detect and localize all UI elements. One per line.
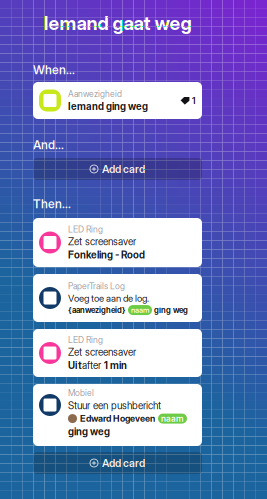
button[interactable]: Add card: [33, 158, 202, 180]
staticText: 1 min: [104, 359, 127, 371]
staticText: PaperTrails Log: [68, 281, 125, 291]
staticText: ging weg: [154, 305, 188, 315]
button[interactable]: Add card: [33, 452, 202, 474]
staticText: When...: [33, 63, 75, 77]
button[interactable]: LED Ring: [33, 329, 202, 377]
staticText: And...: [33, 138, 64, 152]
staticText: LED Ring: [68, 224, 103, 235]
staticText: LED Ring: [68, 335, 103, 345]
staticText: Zet screensaver: [68, 236, 136, 248]
staticText: Voeg toe aan de log.: [68, 292, 149, 304]
staticText: {aanwezigheid}: [68, 305, 126, 315]
staticText: Then...: [33, 197, 71, 211]
staticText: Add card: [102, 162, 145, 175]
staticText: Iemand ging weg: [68, 100, 148, 112]
staticText: naam: [161, 413, 184, 424]
staticText: Add card: [102, 456, 145, 469]
staticText: naam: [131, 305, 149, 314]
staticText: Stuur een pushbericht: [68, 399, 161, 412]
staticText: 1: [192, 95, 196, 106]
button[interactable]: PaperTrails Log: [33, 274, 202, 322]
staticText: after: [82, 359, 104, 371]
staticText: Aanwezigheid: [68, 89, 122, 99]
staticText: Mobiel: [68, 387, 94, 398]
staticText: Uit: [68, 359, 82, 371]
staticText: Iemand gaat weg: [43, 11, 191, 34]
button[interactable]: LED Ring: [33, 218, 202, 267]
button[interactable]: Mobiel: [33, 384, 202, 446]
staticText: Edward Hogeveen: [80, 413, 155, 424]
staticText: Zet screensaver: [68, 346, 136, 358]
button[interactable]: Aanwezigheid: [33, 82, 202, 119]
staticText: ging weg: [68, 426, 110, 438]
staticText: Fonkeling - Rood: [68, 249, 145, 261]
